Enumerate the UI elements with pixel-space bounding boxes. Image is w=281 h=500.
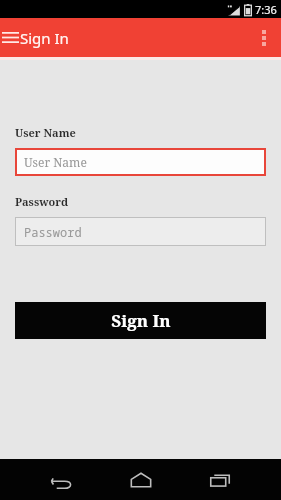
button[interactable]: Home	[101, 459, 180, 500]
staticText: Password	[24, 224, 82, 240]
button[interactable]: Back	[22, 459, 101, 500]
button[interactable]: More options	[247, 18, 281, 57]
staticText: Sign In	[111, 309, 171, 332]
staticText: User Name	[24, 154, 87, 170]
button[interactable]: Recent apps	[180, 459, 259, 500]
button[interactable]: Sign In	[15, 302, 266, 339]
staticText: Sign In	[20, 28, 69, 48]
staticText: User Name	[15, 125, 76, 140]
button[interactable]: Password	[15, 217, 266, 246]
staticText: Password	[15, 194, 69, 209]
staticText: 7:36	[255, 2, 277, 17]
button[interactable]: User Name	[15, 148, 266, 176]
button[interactable]: Open navigation menu	[0, 18, 20, 57]
